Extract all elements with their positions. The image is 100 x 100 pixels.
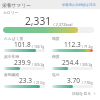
button[interactable]: カロリー: [3, 10, 94, 33]
staticText: カロリー: [3, 10, 19, 15]
staticText: 112.3: [64, 40, 81, 49]
staticText: 101.8: [14, 40, 31, 49]
staticText: 脂質: [52, 36, 60, 41]
staticText: 炭水化物: [4, 54, 20, 59]
button[interactable]: 脂質: [52, 36, 93, 52]
staticText: 栄養素の目標値を設定: [0, 3, 96, 7]
staticText: / 7.50g: [81, 80, 93, 84]
staticText: 詳細を見る: [72, 91, 92, 96]
staticText: / 21.0g: [33, 80, 45, 84]
button[interactable]: 栄養素の目標値を設定: [0, 3, 96, 7]
staticText: / 2,372kcal: [52, 22, 73, 27]
staticText: 糖質: [52, 54, 60, 59]
button[interactable]: 食物繊維: [4, 72, 45, 88]
staticText: / 326.2g: [31, 62, 45, 66]
button[interactable]: 炭水化物: [4, 54, 45, 70]
button[interactable]: 糖質: [52, 54, 93, 70]
staticText: / 71.2g: [81, 44, 93, 48]
staticText: 3.70: [67, 76, 81, 85]
staticText: 239.9: [14, 58, 31, 67]
staticText: 食物繊維: [4, 72, 20, 77]
button[interactable]: 塩分: [52, 72, 93, 88]
button[interactable]: 詳細を見る: [72, 91, 96, 96]
staticText: 塩分: [52, 72, 60, 77]
staticText: / 305.2g: [79, 62, 93, 66]
staticText: 23.3: [19, 76, 33, 85]
staticText: たんぱく質: [4, 36, 24, 41]
staticText: / 106.7g: [31, 44, 45, 48]
other: 詳細を見る: [93, 92, 96, 95]
staticText: 254.4: [62, 58, 79, 67]
staticText: 2,331: [25, 14, 52, 28]
button[interactable]: たんぱく質: [4, 36, 45, 52]
button[interactable]: 栄養サマリー: [2, 2, 32, 8]
staticText: 栄養サマリー: [2, 2, 32, 8]
